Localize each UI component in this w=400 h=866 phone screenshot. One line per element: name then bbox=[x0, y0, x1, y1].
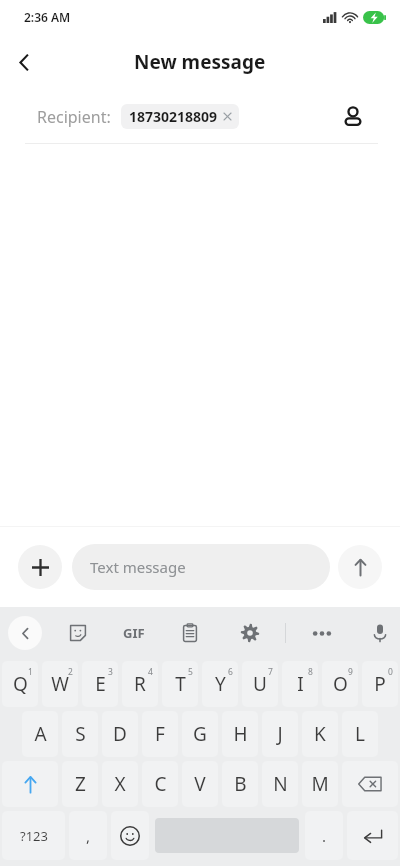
staticText: I bbox=[297, 671, 304, 697]
staticText: 3 bbox=[108, 666, 113, 678]
button[interactable]: B bbox=[222, 761, 258, 807]
staticText: 2:36 AM bbox=[24, 9, 71, 25]
button[interactable]: Enter bbox=[347, 811, 398, 860]
staticText: 1 bbox=[28, 666, 33, 678]
button[interactable]: A bbox=[22, 711, 58, 757]
button[interactable]: Send bbox=[338, 545, 382, 589]
button[interactable]: Shift bbox=[2, 761, 58, 807]
staticText: G bbox=[193, 721, 207, 747]
staticText: P bbox=[374, 671, 386, 697]
staticText: GIF bbox=[123, 624, 145, 642]
button[interactable]: U bbox=[242, 661, 278, 707]
staticText: S bbox=[75, 721, 86, 747]
staticText: H bbox=[233, 721, 248, 747]
staticText: E bbox=[95, 671, 106, 697]
staticText: O bbox=[333, 671, 348, 697]
button[interactable]: Keyboard settings bbox=[232, 607, 268, 659]
button[interactable]: R bbox=[122, 661, 158, 707]
staticText: V bbox=[194, 771, 206, 797]
button[interactable]: D bbox=[102, 711, 138, 757]
button[interactable]: Back bbox=[0, 38, 48, 86]
button[interactable]: L bbox=[342, 711, 378, 757]
button[interactable]: Emoji bbox=[111, 811, 149, 860]
staticText: B bbox=[234, 771, 247, 797]
staticText: X bbox=[114, 771, 126, 797]
button[interactable]: J bbox=[262, 711, 298, 757]
button[interactable]: H bbox=[222, 711, 258, 757]
button[interactable]: Voice input bbox=[362, 607, 398, 659]
staticText: 2 bbox=[68, 666, 73, 678]
staticText: ?123 bbox=[20, 827, 48, 845]
staticText: Text message bbox=[90, 557, 186, 577]
button[interactable]: G bbox=[182, 711, 218, 757]
button[interactable]: Z bbox=[62, 761, 98, 807]
staticText: 7 bbox=[268, 666, 273, 678]
button[interactable]: Sticker bbox=[60, 607, 96, 659]
button[interactable]: S bbox=[62, 711, 98, 757]
button[interactable]: E bbox=[82, 661, 118, 707]
button[interactable]: T bbox=[162, 661, 198, 707]
button[interactable]: V bbox=[182, 761, 218, 807]
button[interactable]: . bbox=[305, 811, 343, 860]
staticText: Q bbox=[13, 671, 28, 697]
button[interactable]: GIF bbox=[117, 616, 151, 650]
button[interactable]: K bbox=[302, 711, 338, 757]
button[interactable]: Collapse bbox=[8, 616, 42, 650]
button[interactable]: ?123 bbox=[2, 811, 65, 860]
button[interactable]: More options bbox=[305, 616, 339, 650]
button[interactable]: O bbox=[322, 661, 358, 707]
staticText: 18730218809 bbox=[129, 107, 218, 126]
staticText: W bbox=[51, 671, 69, 697]
button[interactable]: W bbox=[42, 661, 78, 707]
staticText: 0 bbox=[388, 666, 393, 678]
button[interactable]: Backspace bbox=[342, 761, 398, 807]
staticText: , bbox=[86, 826, 91, 846]
staticText: A bbox=[34, 721, 47, 747]
staticText: D bbox=[113, 721, 127, 747]
button[interactable]: I bbox=[282, 661, 318, 707]
staticText: N bbox=[273, 771, 288, 797]
staticText: U bbox=[253, 671, 267, 697]
button[interactable]: C bbox=[142, 761, 178, 807]
staticText: K bbox=[314, 721, 326, 747]
staticText: Y bbox=[215, 671, 226, 697]
button[interactable]: Attach bbox=[18, 545, 62, 589]
staticText: 4 bbox=[148, 666, 153, 678]
button[interactable]: X bbox=[102, 761, 138, 807]
button[interactable]: Q bbox=[2, 661, 38, 707]
button[interactable]: Y bbox=[202, 661, 238, 707]
staticText: 9 bbox=[348, 666, 353, 678]
staticText: . bbox=[322, 826, 327, 846]
staticText: M bbox=[311, 771, 329, 797]
staticText: Recipient: bbox=[37, 106, 111, 128]
staticText: L bbox=[355, 721, 365, 747]
staticText: C bbox=[154, 771, 167, 797]
staticText: T bbox=[175, 671, 186, 697]
button[interactable]: 18730218809 bbox=[121, 104, 239, 129]
staticText: F bbox=[155, 721, 165, 747]
staticText: J bbox=[277, 721, 283, 747]
staticText: New message bbox=[134, 49, 266, 75]
staticText: 6 bbox=[228, 666, 233, 678]
staticText: 5 bbox=[188, 666, 193, 678]
button[interactable]: M bbox=[302, 761, 338, 807]
button[interactable]: , bbox=[69, 811, 107, 860]
button[interactable]: P bbox=[362, 661, 398, 707]
button[interactable]: Clipboard bbox=[172, 607, 208, 659]
staticText: 8 bbox=[308, 666, 313, 678]
button[interactable]: N bbox=[262, 761, 298, 807]
button[interactable]: Text message bbox=[72, 544, 330, 590]
staticText: Z bbox=[75, 771, 86, 797]
button[interactable]: F bbox=[142, 711, 178, 757]
button[interactable]: Contacts bbox=[334, 98, 372, 136]
staticText: R bbox=[134, 671, 146, 697]
